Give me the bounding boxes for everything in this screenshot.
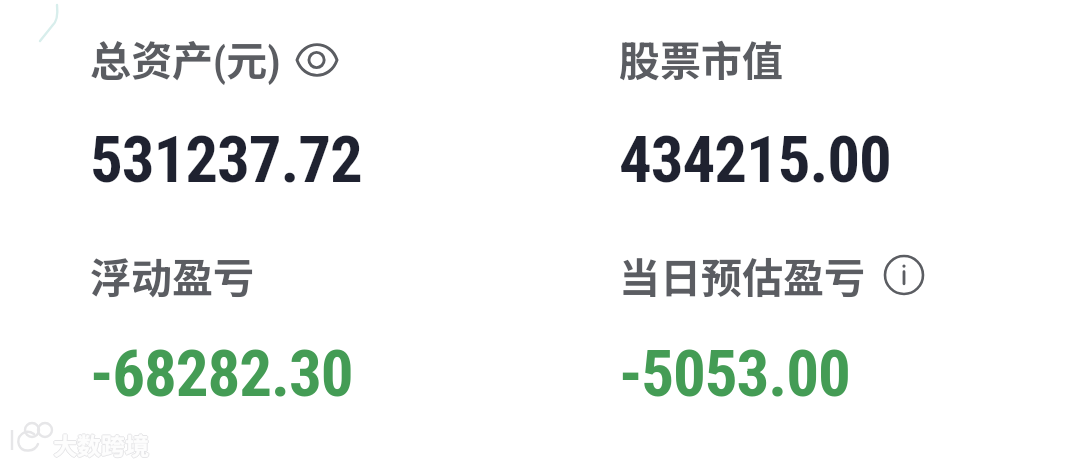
staticText: 大数跨境 [54,427,150,461]
staticText: -5053.00 [619,336,850,412]
staticText: -68282.30 [90,336,353,412]
staticText: 大数跨境 [53,428,149,461]
button[interactable]: 股票市值 [619,28,891,198]
staticText: 大数跨境 [53,427,149,461]
staticText: 434215.00 [619,122,891,198]
button[interactable]: 浮动盈亏 [90,245,353,412]
button[interactable]: 总资产(元) [90,28,362,198]
staticText: 股票市值 [619,28,783,87]
staticText: 浮动盈亏 [90,245,254,304]
staticText: 总资产(元) [90,28,281,87]
staticText: 531237.72 [90,122,362,198]
button[interactable]: Toggle asset visibility [295,36,339,84]
staticText: 大数跨境 [53,426,149,461]
staticText: 大数跨境 [52,427,148,461]
staticText: 当日预估盈亏 [619,245,865,304]
button[interactable]: 当日预估盈亏 [619,245,925,412]
button[interactable]: Estimated profit info [883,254,925,296]
